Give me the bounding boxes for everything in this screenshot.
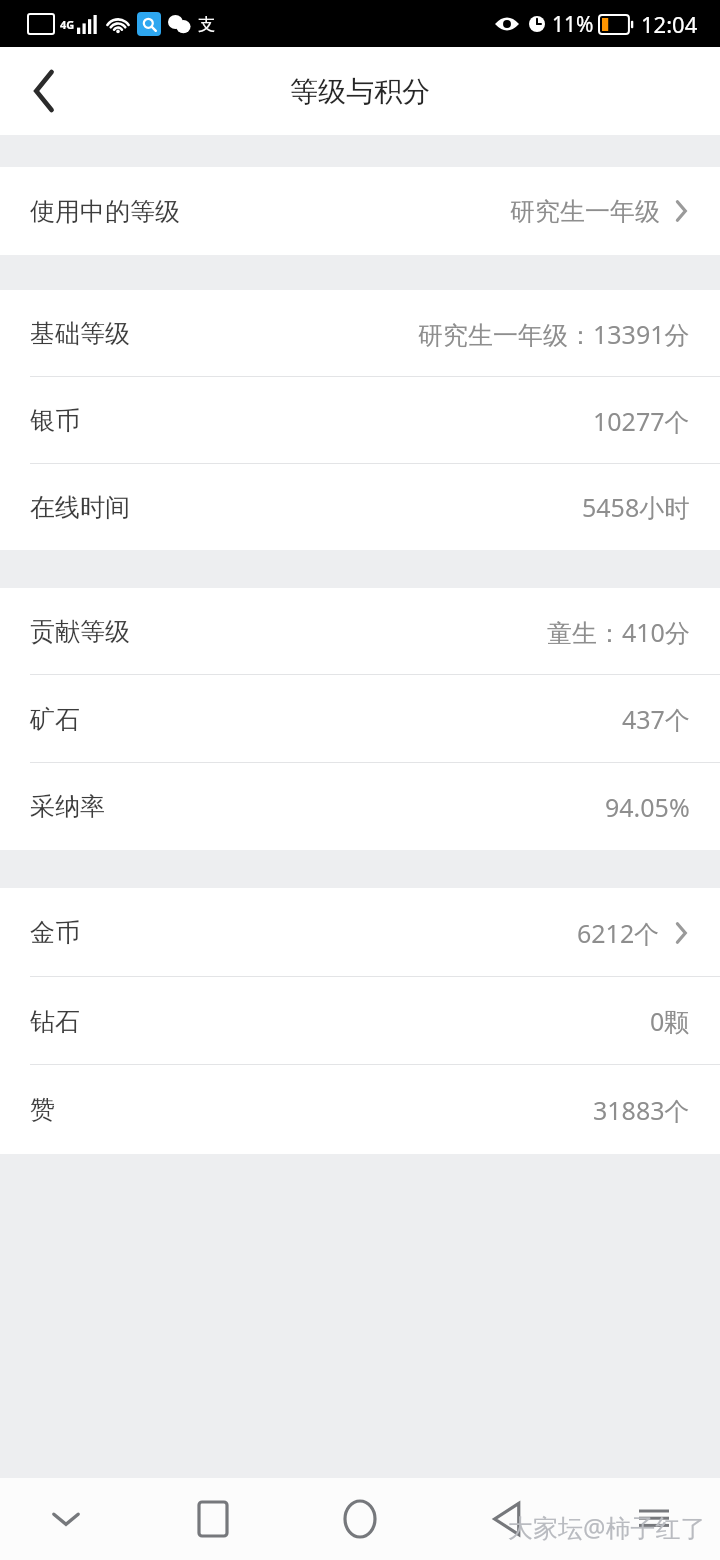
staticText: 5458小时 [582, 490, 690, 524]
button[interactable]: 银币 [0, 377, 720, 464]
staticText: 4G [60, 17, 75, 32]
staticText: 研究生一年级 [510, 196, 660, 227]
button[interactable]: 金币 [0, 888, 720, 977]
staticText: 437个 [622, 702, 690, 736]
button[interactable]: 基础等级 [0, 290, 720, 377]
staticText: 银币 [30, 405, 80, 436]
staticText: 采纳率 [30, 791, 105, 822]
staticText: 0颗 [650, 1004, 690, 1038]
staticText: 研究生一年级：13391分 [418, 317, 690, 351]
button[interactable]: Recent apps [177, 1483, 249, 1555]
button[interactable]: 贡献等级 [0, 588, 720, 675]
staticText: 在线时间 [30, 492, 130, 523]
staticText: 等级与积分 [290, 74, 430, 109]
staticText: 大家坛@柿子红了 [508, 1510, 706, 1544]
staticText: 11% [552, 10, 594, 39]
button[interactable]: 使用中的等级 [0, 167, 720, 255]
staticText: 94.05% [605, 790, 690, 824]
staticText: 矿石 [30, 704, 80, 735]
staticText: 支 [198, 14, 215, 35]
button[interactable]: Hide keyboard [30, 1483, 102, 1555]
staticText: 31883个 [593, 1093, 690, 1127]
button[interactable]: Back [12, 58, 78, 124]
staticText: 钻石 [30, 1006, 80, 1037]
staticText: 赞 [30, 1094, 55, 1125]
button[interactable]: Back [471, 1483, 543, 1555]
staticText: 10277个 [593, 404, 690, 438]
button[interactable]: 赞 [0, 1065, 720, 1154]
button[interactable]: 在线时间 [0, 464, 720, 550]
staticText: 贡献等级 [30, 616, 130, 647]
button[interactable]: 矿石 [0, 675, 720, 763]
button[interactable]: Menu [618, 1483, 690, 1555]
button[interactable]: 采纳率 [0, 763, 720, 850]
staticText: 6212个 [577, 916, 660, 950]
staticText: 金币 [30, 917, 80, 948]
staticText: 12:04 [641, 9, 698, 39]
staticText: 使用中的等级 [30, 196, 180, 227]
staticText: 基础等级 [30, 318, 130, 349]
staticText: 童生：410分 [547, 615, 690, 649]
button[interactable]: Home [324, 1483, 396, 1555]
button[interactable]: 钻石 [0, 977, 720, 1065]
